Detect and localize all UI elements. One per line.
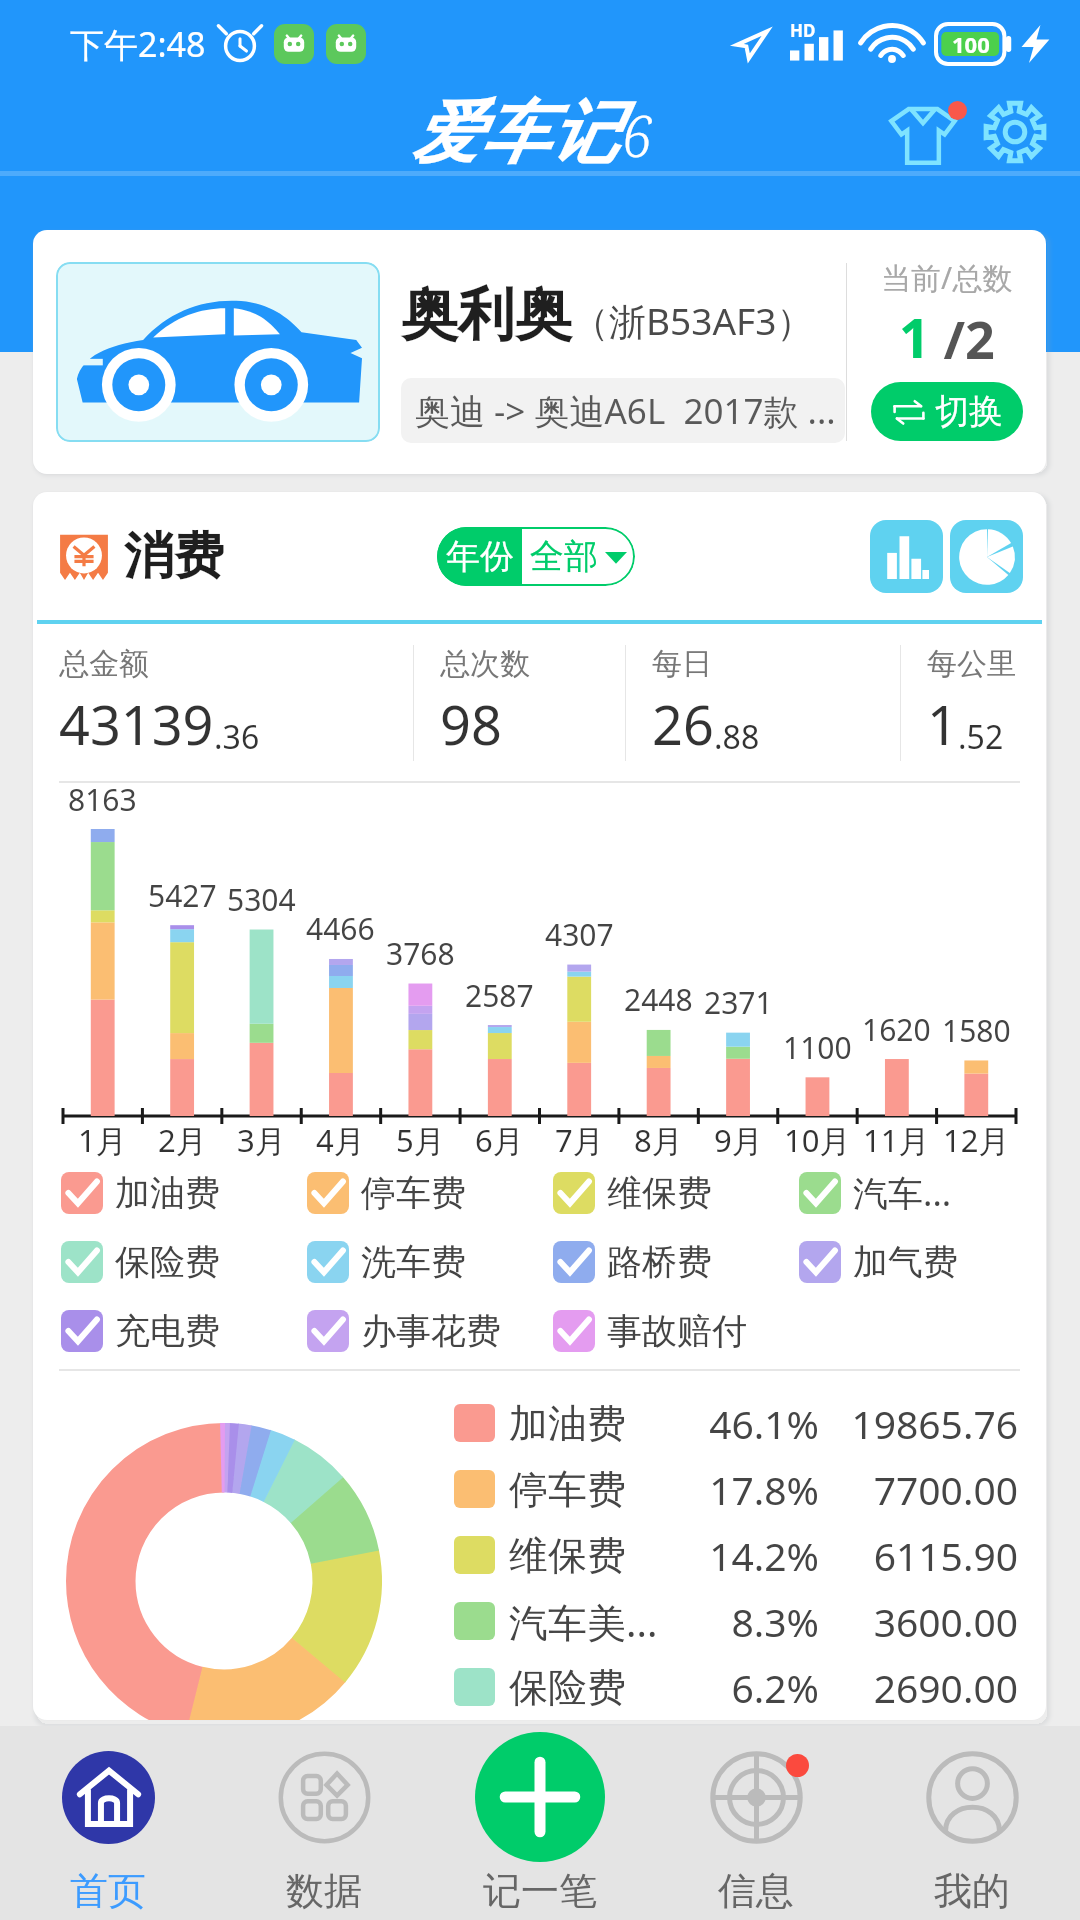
staticText: 7700.00: [819, 1463, 1018, 1516]
staticText: 加气费: [853, 1240, 958, 1284]
button[interactable]: 年份: [437, 527, 635, 586]
staticText: 1: [899, 300, 930, 374]
button[interactable]: 汽车...: [799, 1158, 1045, 1227]
staticText: 46.1%: [684, 1397, 819, 1450]
staticText: 年份: [446, 535, 514, 578]
button[interactable]: 加油费: [433, 1390, 1018, 1456]
staticText: 3600.00: [819, 1595, 1018, 1648]
staticText: 6: [622, 97, 653, 173]
button[interactable]: 记一笔: [432, 1726, 648, 1920]
staticText: 26: [652, 687, 714, 761]
staticText: 2690.00: [819, 1661, 1018, 1714]
staticText: 总金额: [59, 645, 149, 683]
staticText: （浙B53AF3）: [572, 295, 814, 346]
button[interactable]: 停车费: [433, 1456, 1018, 1522]
staticText: 12月: [943, 1119, 1010, 1161]
button[interactable]: 汽车美...: [433, 1588, 1018, 1654]
button[interactable]: 维保费: [433, 1522, 1018, 1588]
button[interactable]: 保险费: [61, 1227, 307, 1296]
staticText: 停车费: [361, 1171, 466, 1215]
staticText: 切换: [935, 390, 1003, 433]
staticText: 奥迪 -> 奥迪A6L 2017款 ...: [415, 387, 836, 435]
button[interactable]: Theme: [883, 88, 971, 176]
button[interactable]: 充电费: [61, 1296, 307, 1365]
staticText: /2: [930, 303, 995, 374]
staticText: 14.2%: [684, 1529, 819, 1582]
staticText: 全部: [530, 535, 598, 578]
staticText: 4466: [306, 908, 375, 949]
button[interactable]: 加气费: [799, 1227, 1045, 1296]
staticText: 8月: [634, 1119, 683, 1161]
staticText: 9月: [714, 1119, 763, 1161]
button[interactable]: 路桥费: [553, 1227, 799, 1296]
staticText: 1620: [862, 1009, 931, 1050]
button[interactable]: 加油费: [61, 1158, 307, 1227]
button[interactable]: Pie chart: [950, 520, 1023, 593]
staticText: 100: [952, 29, 990, 59]
staticText: 我的: [934, 1867, 1010, 1915]
staticText: 汽车...: [853, 1169, 952, 1217]
staticText: .88: [714, 715, 760, 759]
staticText: 10月: [784, 1119, 851, 1161]
staticText: 停车费: [509, 1465, 684, 1514]
staticText: 7月: [555, 1119, 604, 1161]
button[interactable]: 维保费: [553, 1158, 799, 1227]
staticText: 2448: [624, 979, 693, 1020]
staticText: 5304: [227, 879, 296, 920]
staticText: 1: [927, 687, 958, 761]
staticText: .52: [958, 715, 1004, 759]
staticText: 办事花费: [361, 1309, 501, 1353]
staticText: 保险费: [509, 1663, 684, 1712]
staticText: 1100: [783, 1027, 852, 1068]
staticText: 2371: [704, 982, 773, 1023]
staticText: .36: [214, 715, 260, 759]
staticText: HD: [790, 19, 816, 42]
staticText: 爱车记: [411, 91, 618, 177]
button[interactable]: 洗车费: [307, 1227, 553, 1296]
staticText: 6月: [475, 1119, 524, 1161]
button[interactable]: 事故赔付: [553, 1296, 799, 1365]
button[interactable]: 数据: [216, 1726, 432, 1920]
staticText: 加油费: [115, 1171, 220, 1215]
staticText: 维保费: [509, 1531, 684, 1580]
button[interactable]: Bar chart: [870, 520, 943, 593]
staticText: 信息: [718, 1867, 794, 1915]
staticText: 数据: [286, 1867, 362, 1915]
staticText: 洗车费: [361, 1240, 466, 1284]
staticText: 每公里: [927, 645, 1017, 683]
button[interactable]: 保险费: [433, 1654, 1018, 1720]
staticText: 消费: [124, 525, 224, 588]
button[interactable]: 我的: [864, 1726, 1080, 1920]
button[interactable]: 奥利奥: [33, 230, 1046, 474]
staticText: 6115.90: [819, 1529, 1018, 1582]
staticText: 记一笔: [483, 1867, 597, 1915]
staticText: 8163: [68, 779, 137, 820]
button[interactable]: Settings: [971, 88, 1059, 176]
staticText: 事故赔付: [607, 1309, 747, 1353]
button[interactable]: 切换: [871, 382, 1023, 441]
staticText: 总次数: [440, 645, 530, 683]
staticText: 43139: [59, 687, 214, 761]
staticText: 5427: [148, 875, 217, 916]
button[interactable]: 首页: [0, 1726, 216, 1920]
staticText: 17.8%: [684, 1463, 819, 1516]
staticText: 奥利奥: [401, 279, 572, 351]
staticText: 维保费: [607, 1171, 712, 1215]
staticText: 6.2%: [684, 1661, 819, 1714]
staticText: 3月: [237, 1119, 286, 1161]
staticText: 11月: [863, 1119, 930, 1161]
button[interactable]: 停车费: [307, 1158, 553, 1227]
staticText: 98: [440, 687, 502, 761]
staticText: 每日: [652, 645, 712, 683]
staticText: 保险费: [115, 1240, 220, 1284]
staticText: 3768: [386, 933, 455, 974]
staticText: 汽车美...: [509, 1595, 684, 1648]
staticText: 加油费: [509, 1399, 684, 1448]
staticText: 5月: [396, 1119, 445, 1161]
staticText: 充电费: [115, 1309, 220, 1353]
button[interactable]: 办事花费: [307, 1296, 553, 1365]
staticText: 下午2:48: [70, 21, 206, 67]
button[interactable]: 信息: [648, 1726, 864, 1920]
staticText: 2月: [158, 1119, 207, 1161]
staticText: 路桥费: [607, 1240, 712, 1284]
